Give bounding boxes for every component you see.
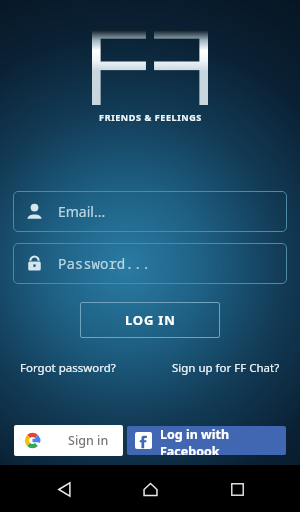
staticText: Sign in [68,432,109,449]
staticText: Log in with Facebook [160,426,286,455]
button[interactable]: Sign up for FF Chat? [170,358,282,378]
button[interactable]: Sign in [14,425,123,456]
staticText: LOG IN [125,311,176,329]
button[interactable]: Log in with Facebook [127,426,286,455]
button[interactable]: LOG IN [80,302,220,338]
button[interactable]: Home [127,466,173,512]
button[interactable]: Email... [13,191,287,232]
button[interactable]: Forgot password? [18,358,118,378]
staticText: FRIENDS & FEELINGS [99,111,202,123]
staticText: Sign up for FF Chat? [172,360,280,376]
staticText: Email... [58,202,106,221]
staticText: Password... [58,254,151,273]
button[interactable]: Back [41,466,87,512]
staticText: Forgot password? [20,360,116,376]
button[interactable]: Password... [13,243,287,284]
button[interactable]: Recent apps [214,466,260,512]
